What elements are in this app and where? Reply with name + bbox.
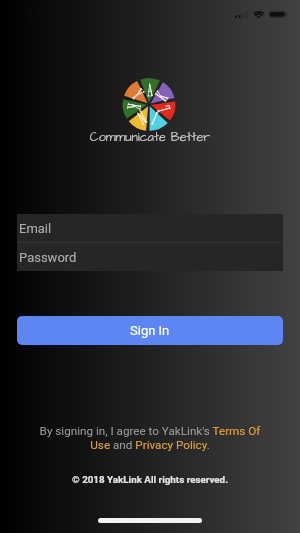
staticText: © 2018 YakLink All rights reserved.	[0, 474, 300, 485]
other: Wi-Fi	[252, 10, 266, 19]
button[interactable]: By signing in, I agree to YakLink's Term…	[36, 424, 264, 452]
staticText: Sign In	[130, 323, 170, 338]
other: Battery	[268, 10, 289, 19]
other: Cellular signal	[235, 11, 248, 19]
button[interactable]: Sign In	[17, 316, 283, 345]
staticText: Password	[19, 250, 77, 265]
staticText: A	[146, 78, 154, 101]
staticText: Communicate Better	[0, 129, 300, 146]
staticText: I	[142, 106, 167, 131]
staticText: K	[121, 98, 147, 115]
staticText: L	[151, 98, 176, 119]
button[interactable]: Password	[17, 243, 283, 271]
staticText: K	[149, 83, 173, 109]
staticText: Y	[127, 83, 149, 106]
button[interactable]: Email	[17, 214, 283, 242]
staticText: Email	[19, 221, 52, 236]
staticText: N	[128, 104, 156, 131]
